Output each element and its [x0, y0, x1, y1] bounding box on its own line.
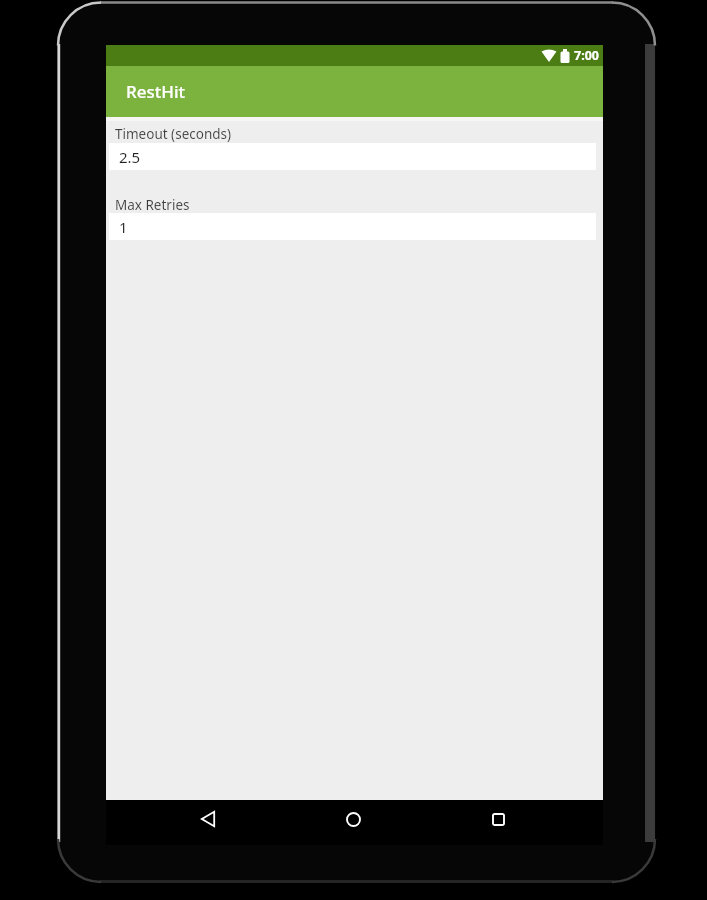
button[interactable]: [338, 804, 368, 834]
staticText: Timeout (seconds): [115, 125, 232, 143]
staticText: 2.5: [119, 147, 141, 167]
button[interactable]: 1: [109, 213, 596, 240]
button[interactable]: [193, 804, 223, 834]
button[interactable]: [483, 804, 513, 834]
staticText: RestHit: [126, 80, 186, 103]
staticText: 1: [119, 217, 128, 237]
staticText: 7:00: [574, 47, 599, 64]
staticText: Max Retries: [115, 196, 190, 214]
button[interactable]: 2.5: [109, 143, 596, 170]
